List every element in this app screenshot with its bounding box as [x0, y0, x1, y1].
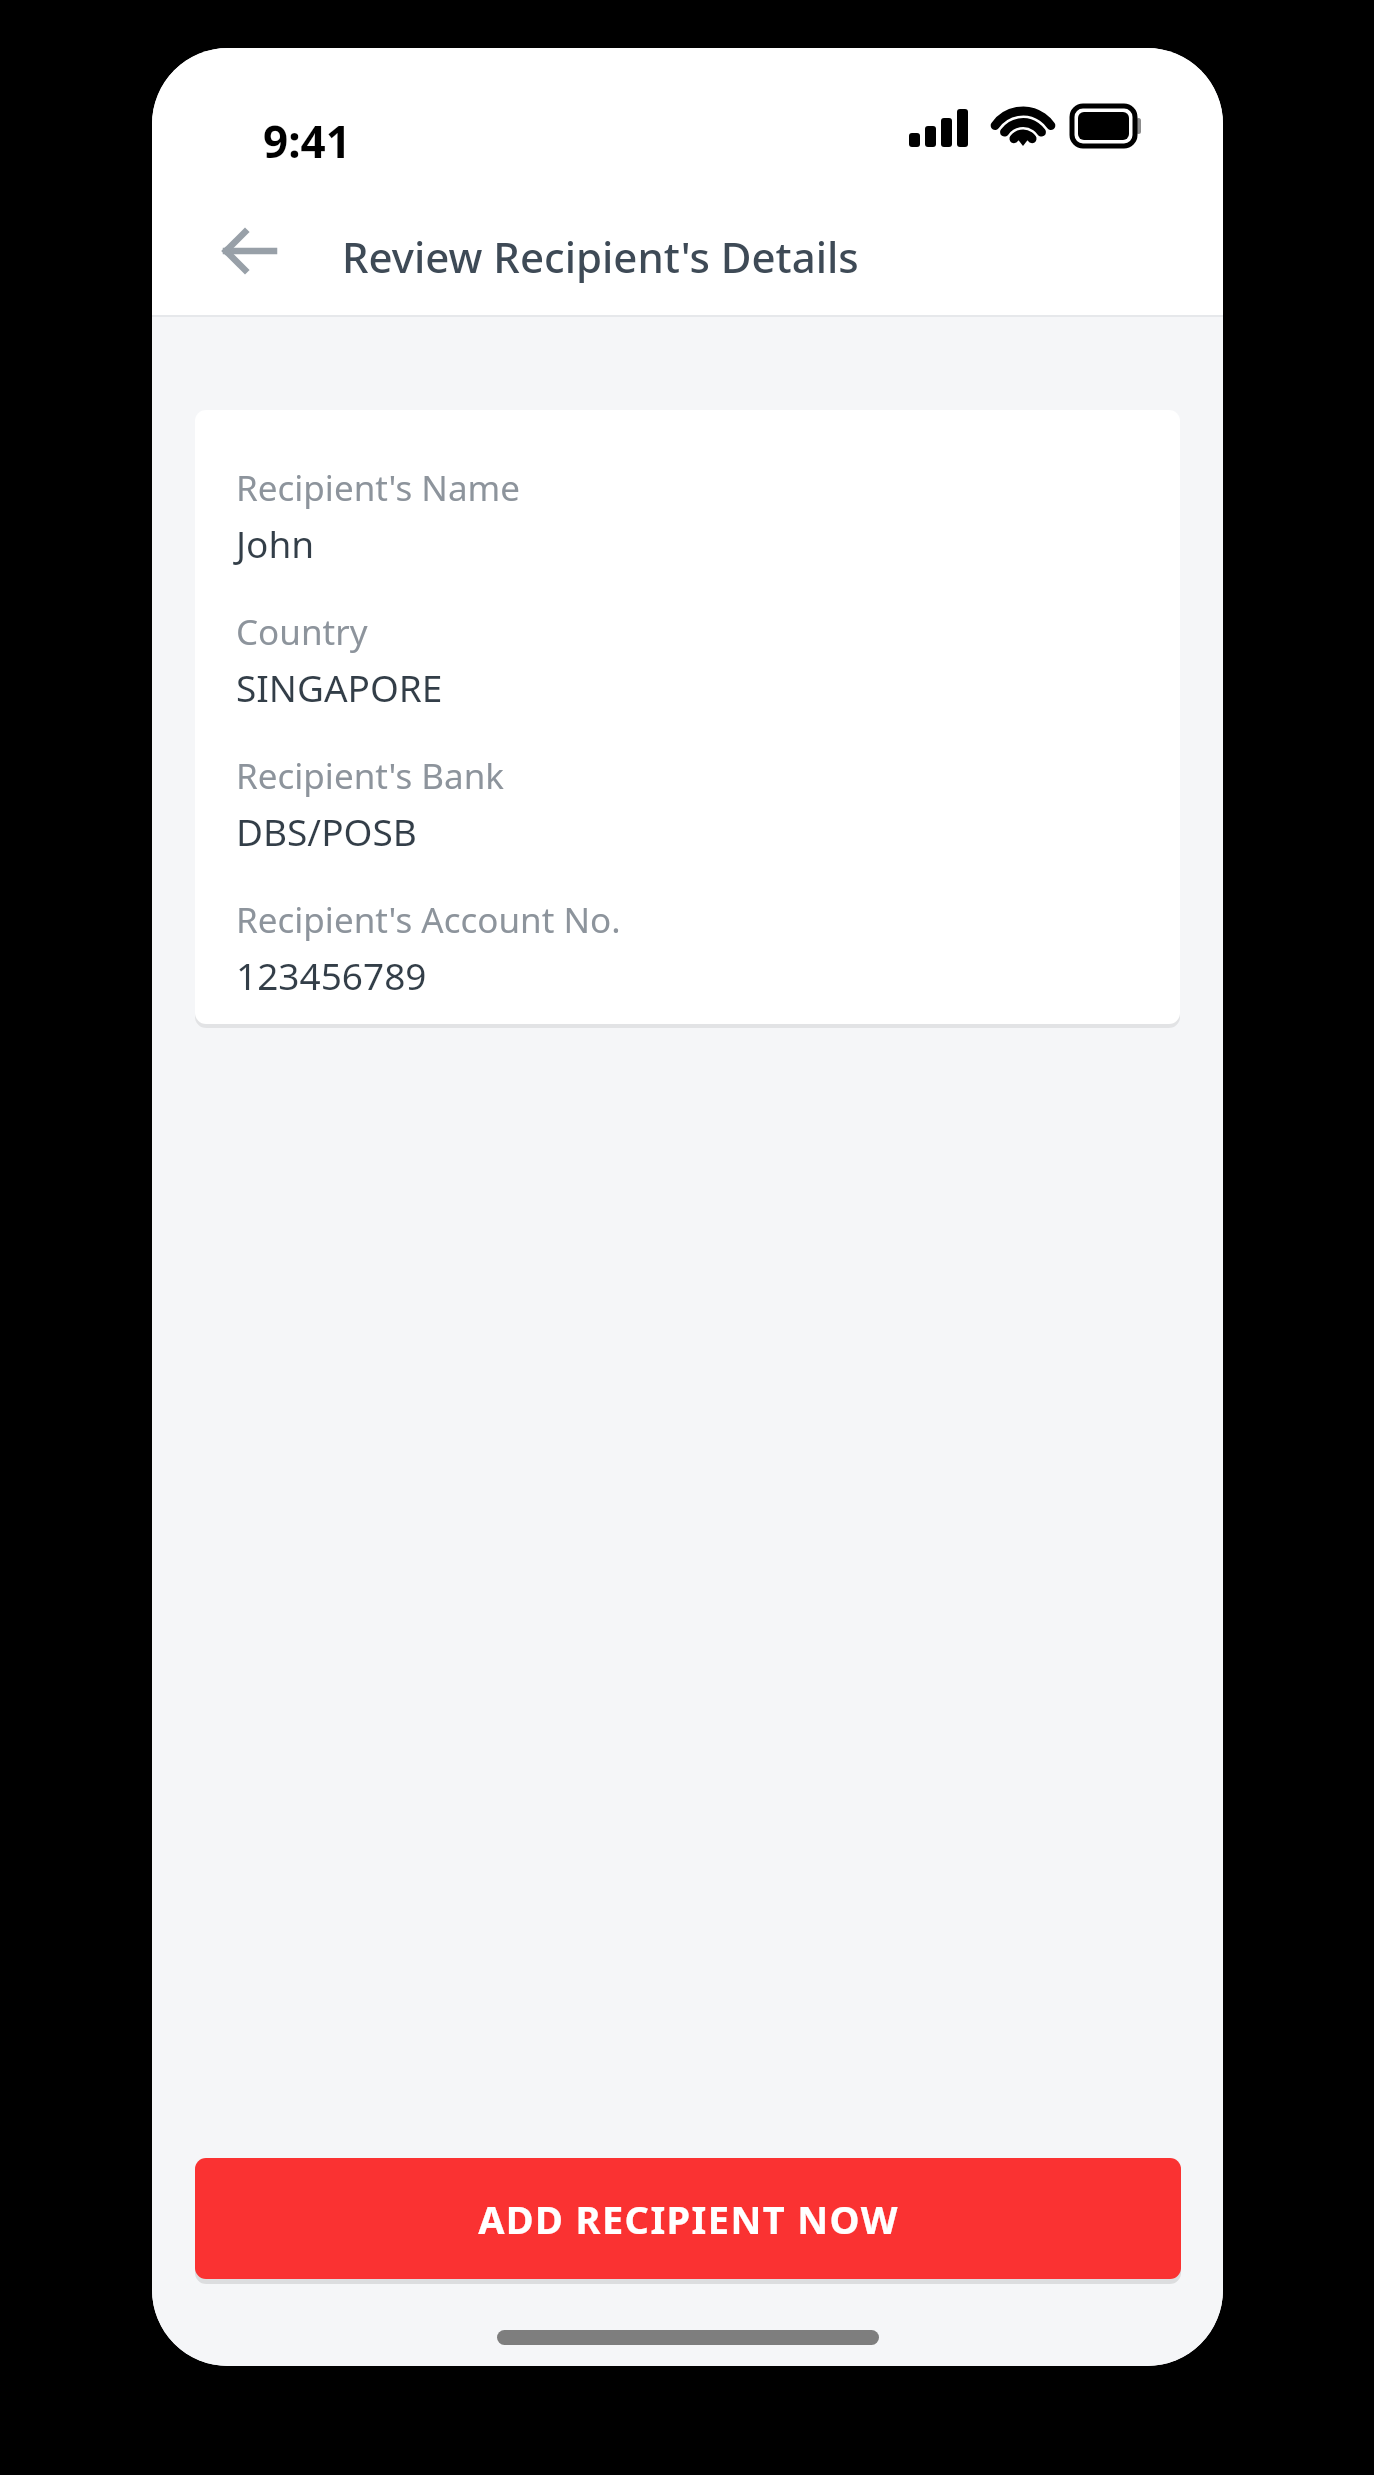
button[interactable]: ADD RECIPIENT NOW — [195, 2158, 1181, 2279]
staticText: 123456789 — [236, 950, 427, 1000]
staticText: John — [236, 518, 315, 568]
staticText: Recipient's Name — [236, 464, 520, 512]
staticText: ADD RECIPIENT NOW — [478, 2193, 899, 2245]
staticText: Recipient's Account No. — [236, 896, 621, 944]
staticText: Review Recipient's Details — [342, 228, 859, 285]
staticText: Recipient's Bank — [236, 752, 504, 800]
staticText: DBS/POSB — [236, 806, 417, 856]
staticText: Country — [236, 608, 368, 656]
staticText: 9:41 — [263, 111, 351, 171]
staticText: SINGAPORE — [236, 662, 443, 712]
button[interactable]: Back — [202, 203, 298, 299]
